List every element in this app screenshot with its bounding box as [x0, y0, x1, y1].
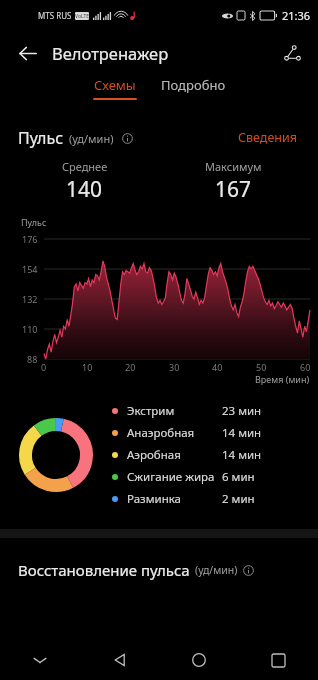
- staticText: Аэробная: [127, 447, 222, 463]
- staticText: Велотренажер: [52, 42, 169, 64]
- button[interactable]: Главный экран: [179, 640, 219, 680]
- staticText: 14 мин: [222, 425, 262, 441]
- staticText: Среднее: [62, 159, 108, 174]
- staticText: Разминка: [127, 491, 222, 507]
- staticText: 10: [82, 361, 93, 373]
- staticText: 88: [27, 353, 38, 365]
- button[interactable]: Экстрим: [112, 403, 318, 419]
- button[interactable]: Схемы: [86, 76, 144, 100]
- staticText: MTS RUS: [38, 10, 72, 21]
- button[interactable]: Назад: [100, 640, 140, 680]
- staticText: 20: [125, 361, 136, 373]
- staticText: 2 мин: [222, 491, 255, 507]
- button[interactable]: Обзор приложений: [258, 640, 298, 680]
- staticText: 50: [256, 361, 267, 373]
- button[interactable]: Сжигание жира: [112, 469, 318, 485]
- staticText: 14 мин: [222, 447, 262, 463]
- staticText: Анаэробная: [127, 425, 222, 441]
- button[interactable]: Информация: [119, 130, 135, 146]
- staticText: Сжигание жира: [127, 469, 222, 485]
- button[interactable]: Назад: [9, 35, 45, 71]
- staticText: 167: [215, 175, 252, 204]
- staticText: Время (мин): [255, 373, 310, 385]
- button[interactable]: Скрыть клавиатуру: [20, 640, 60, 680]
- staticText: (уд/мин): [195, 563, 238, 577]
- staticText: Экстрим: [127, 403, 222, 419]
- button[interactable]: Подробно: [154, 76, 233, 94]
- staticText: 154: [22, 263, 38, 275]
- button[interactable]: Анаэробная: [112, 425, 318, 441]
- staticText: 60: [300, 361, 311, 373]
- staticText: Подробно: [161, 76, 226, 94]
- staticText: 132: [22, 293, 38, 305]
- button[interactable]: Аэробная: [112, 447, 318, 463]
- staticText: Пульс: [18, 127, 64, 149]
- button[interactable]: Разминка: [112, 491, 318, 507]
- staticText: Сведения: [238, 129, 297, 146]
- staticText: Восстановление пульса: [18, 560, 190, 580]
- staticText: (уд/мин): [69, 131, 114, 146]
- staticText: 30: [169, 361, 180, 373]
- staticText: Пульс: [21, 216, 47, 228]
- button[interactable]: Восстановление пульса: [0, 560, 318, 580]
- button[interactable]: Сведения: [235, 126, 300, 149]
- staticText: 40: [212, 361, 223, 373]
- staticText: Схемы: [94, 76, 136, 94]
- staticText: 110: [22, 323, 38, 335]
- staticText: 0: [41, 361, 47, 373]
- staticText: 23 мин: [222, 403, 262, 419]
- staticText: 21:36: [282, 8, 311, 23]
- staticText: VoLTE: [75, 13, 89, 20]
- staticText: Максимум: [205, 159, 262, 174]
- staticText: 176: [22, 233, 38, 245]
- button[interactable]: Поделиться: [274, 35, 310, 71]
- staticText: 6 мин: [222, 469, 255, 485]
- staticText: 140: [66, 175, 103, 204]
